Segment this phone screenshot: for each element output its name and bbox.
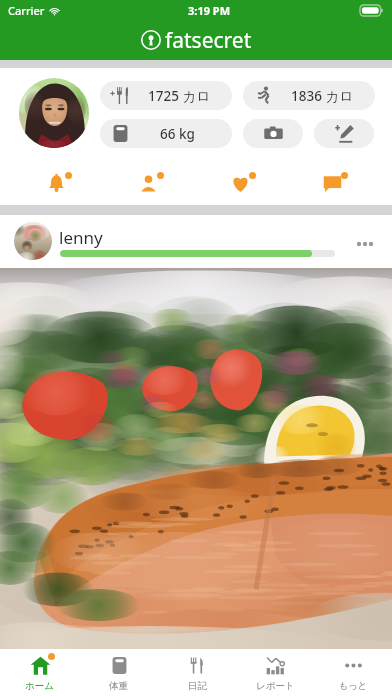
button[interactable]: 66 kg [100,119,232,148]
button[interactable]: More options [350,229,380,259]
staticText: Carrier [8,3,45,18]
staticText: 66 kg [160,125,195,143]
button[interactable]: lenny avatar [14,222,52,260]
staticText: もっと [338,680,368,692]
button[interactable] [0,268,392,649]
button[interactable]: 日記 [158,649,236,696]
staticText: 日記 [188,680,207,692]
staticText: fatsecret [165,26,252,55]
staticText: ホーム [25,680,54,692]
staticText: 3:19 PM [188,3,231,18]
button[interactable]: レポート [236,649,314,696]
button[interactable]: 1836 カロ [243,81,375,110]
button[interactable]: Messages [286,165,378,201]
button[interactable]: もっと [314,649,392,696]
button[interactable]: Likes [194,165,286,201]
button[interactable]: ホーム [0,649,79,696]
staticText: lenny [59,226,103,249]
staticText: 1836 カロ [291,87,354,105]
button[interactable]: Friends [102,165,194,201]
button[interactable]: Camera [243,119,303,148]
staticText: 1725 カロ [148,87,211,105]
button[interactable]: Notifications [10,165,102,201]
staticText: 体重 [109,680,128,692]
button[interactable]: Profile photo [19,78,89,148]
button[interactable]: 1725 カロ [100,81,232,110]
button[interactable]: 体重 [79,649,158,696]
button[interactable]: Add entry [314,119,374,148]
staticText: レポート [256,680,295,692]
